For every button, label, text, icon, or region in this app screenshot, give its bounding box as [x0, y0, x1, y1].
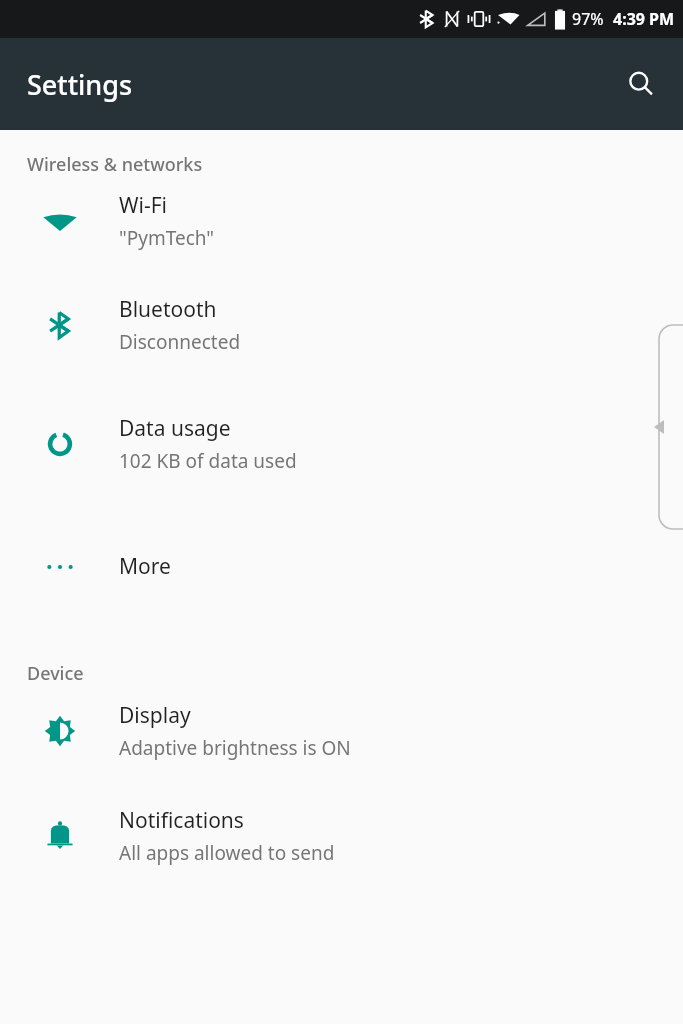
- staticText: Notifications: [119, 806, 244, 835]
- button[interactable]: Display: [0, 686, 683, 776]
- staticText: Display: [119, 701, 191, 730]
- button[interactable]: Wi-Fi: [0, 177, 683, 265]
- staticText: Adaptive brightness is ON: [119, 735, 351, 761]
- staticText: Data usage: [119, 414, 231, 443]
- staticText: 4:39 PM: [613, 8, 675, 30]
- button[interactable]: Search: [617, 60, 665, 108]
- staticText: More: [119, 552, 171, 581]
- button[interactable]: Data usage: [0, 384, 683, 504]
- button[interactable]: More: [0, 504, 683, 629]
- staticText: Device: [27, 661, 84, 686]
- button[interactable]: Bluetooth: [0, 265, 683, 384]
- staticText: All apps allowed to send: [119, 840, 335, 866]
- staticText: Bluetooth: [119, 295, 217, 324]
- staticText: "PymTech": [119, 225, 215, 251]
- staticText: Wireless & networks: [27, 152, 203, 177]
- staticText: 102 KB of data used: [119, 448, 297, 474]
- staticText: Disconnected: [119, 329, 241, 355]
- button[interactable]: Notifications: [0, 776, 683, 895]
- staticText: Settings: [27, 66, 133, 103]
- staticText: Wi-Fi: [119, 191, 168, 220]
- staticText: 97%: [572, 8, 604, 30]
